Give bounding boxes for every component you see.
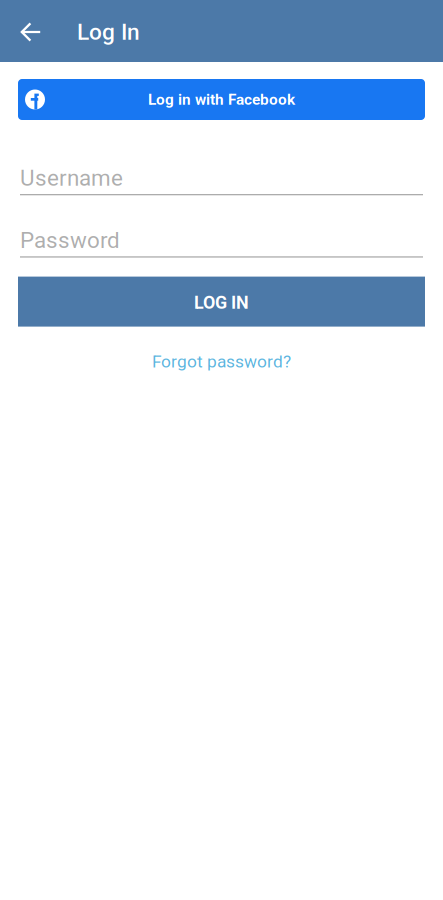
button[interactable]: Back — [0, 0, 56, 62]
staticText: Log in with Facebook — [148, 90, 295, 108]
staticText: Forgot password? — [152, 351, 291, 372]
staticText: Log In — [77, 19, 140, 45]
button[interactable]: Log in with Facebook — [18, 79, 425, 120]
staticText: Password — [20, 227, 120, 253]
staticText: LOG IN — [194, 292, 249, 313]
staticText: Username — [20, 165, 123, 191]
button[interactable]: Forgot password? — [18, 343, 425, 379]
button[interactable]: LOG IN — [18, 277, 425, 327]
